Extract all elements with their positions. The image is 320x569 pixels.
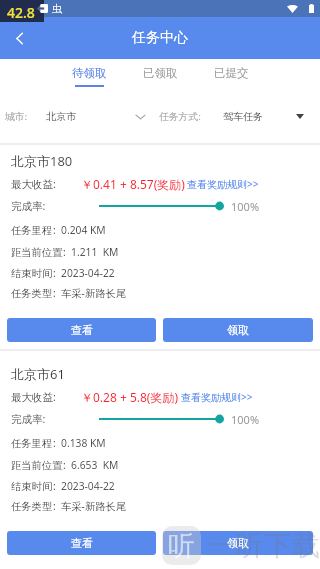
staticText: 4:58: [13, 1, 31, 13]
staticText: 虫: [52, 2, 62, 15]
staticText: 领取: [227, 536, 249, 550]
staticText: 任务类型: [11, 287, 53, 300]
button[interactable]: 查看: [7, 531, 156, 555]
button[interactable]: [152, 90, 320, 143]
staticText: :: [63, 245, 66, 259]
staticText: 城市:: [5, 110, 28, 123]
staticText: 待领取: [72, 66, 107, 80]
staticText: 车采-新路长尾: [61, 499, 127, 513]
button[interactable]: 待领取: [54, 59, 125, 90]
staticText: 结束时间: [11, 267, 53, 280]
staticText: :: [53, 286, 56, 300]
staticText: 1.211 KM: [71, 245, 119, 259]
button[interactable]: 查看: [7, 318, 156, 342]
staticText: 任务类型: [11, 500, 53, 513]
button[interactable]: 查看奖励规则>>: [187, 177, 259, 191]
staticText: 0.138 KM: [61, 436, 106, 450]
staticText: 最大收益:: [11, 390, 56, 404]
staticText: 100%: [231, 412, 260, 426]
staticText: 42.8: [7, 3, 35, 22]
staticText: ￥0.41 + 8.57(奖励): [81, 176, 185, 192]
button[interactable]: 查看奖励规则>>: [181, 390, 253, 404]
staticText: 任务里程: [11, 437, 53, 450]
staticText: 领取: [227, 323, 249, 337]
staticText: :: [53, 479, 56, 493]
button[interactable]: [0, 90, 152, 143]
staticText: 查看奖励规则>>: [181, 390, 253, 404]
staticText: :: [53, 223, 56, 237]
button[interactable]: 领取: [163, 318, 313, 342]
staticText: 完成率:: [11, 199, 46, 213]
staticText: ￥0.28 + 5.8(奖励): [81, 389, 179, 405]
staticText: 驾车任务: [223, 110, 263, 123]
button[interactable]: 已提交: [196, 59, 267, 90]
staticText: 2023-04-22: [61, 479, 115, 493]
staticText: :: [53, 499, 56, 513]
staticText: 完成率:: [11, 412, 46, 426]
staticText: 任务方式:: [159, 110, 201, 123]
staticText: 6.653 KM: [71, 458, 119, 472]
staticText: 查看奖励规则>>: [187, 177, 259, 191]
staticText: 北京市61: [11, 365, 65, 383]
staticText: :: [63, 458, 66, 472]
staticText: 任务里程: [11, 224, 53, 237]
staticText: 查看: [71, 323, 93, 337]
staticText: 查看: [71, 536, 93, 550]
staticText: 距当前位置: [11, 246, 63, 259]
staticText: 2023-04-22: [61, 266, 115, 280]
staticText: 任务中心: [132, 29, 188, 47]
staticText: 已提交: [214, 66, 249, 80]
staticText: 北京市180: [11, 152, 73, 170]
staticText: 听: [168, 529, 195, 563]
staticText: 一听下载: [208, 528, 320, 563]
staticText: 北京市: [46, 110, 76, 123]
button[interactable]: Back: [0, 19, 38, 57]
staticText: 最大收益:: [11, 177, 56, 191]
staticText: 0.204 KM: [61, 223, 106, 237]
button[interactable]: 已领取: [125, 59, 196, 90]
staticText: 100%: [231, 199, 260, 213]
staticText: 结束时间: [11, 480, 53, 493]
staticText: 已领取: [143, 66, 178, 80]
staticText: :: [53, 266, 56, 280]
button[interactable]: 领取: [163, 531, 313, 555]
staticText: :: [53, 436, 56, 450]
staticText: 车采-新路长尾: [61, 286, 127, 300]
staticText: 距当前位置: [11, 459, 63, 472]
